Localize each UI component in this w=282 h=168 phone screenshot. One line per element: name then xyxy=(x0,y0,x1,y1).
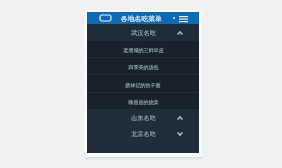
staticText: 蔡林记的热干面 xyxy=(125,82,161,88)
staticText: 顺香居的烧卖 xyxy=(128,99,159,105)
button[interactable]: Menu xyxy=(177,12,189,24)
button[interactable]: 北京名吃 xyxy=(87,126,199,142)
button[interactable]: 山东名吃 xyxy=(87,110,199,126)
button[interactable]: TV xyxy=(87,12,199,24)
staticText: 四季美的汤包 xyxy=(128,64,159,70)
button[interactable]: 四季美的汤包 xyxy=(87,58,199,75)
staticText: 各地名吃菜单 xyxy=(121,14,162,23)
button[interactable]: 武汉名吃 xyxy=(87,24,199,41)
staticText: 武汉名吃 xyxy=(131,29,156,37)
staticText: 山东名吃 xyxy=(131,114,156,122)
staticText: 北京名吃 xyxy=(131,130,156,138)
button[interactable]: 蔡林记的热干面 xyxy=(87,76,199,93)
button[interactable]: 老通城的三鲜豆皮 xyxy=(87,41,199,58)
other: TV xyxy=(100,15,111,21)
button[interactable]: 顺香居的烧卖 xyxy=(87,93,199,110)
staticText: 老通城的三鲜豆皮 xyxy=(123,47,164,53)
